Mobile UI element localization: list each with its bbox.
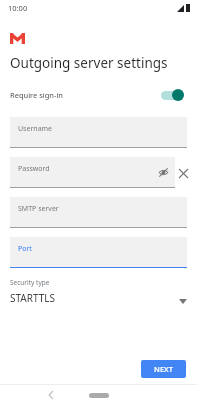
staticText: SMTP server xyxy=(18,204,59,214)
staticText: Security type xyxy=(10,278,50,287)
button[interactable]: Password xyxy=(10,157,175,188)
button[interactable]: Username xyxy=(10,117,187,148)
button[interactable]: Require sign-in xyxy=(0,84,197,106)
button[interactable]: Back xyxy=(43,387,59,403)
staticText: Outgoing server settings xyxy=(10,54,168,72)
staticText: Username xyxy=(18,124,53,134)
staticText: Require sign-in xyxy=(10,90,63,100)
button[interactable]: Show password xyxy=(156,165,170,179)
staticText: 10:00 xyxy=(8,3,28,13)
staticText: Password xyxy=(18,164,50,174)
button[interactable]: Port xyxy=(10,237,187,268)
staticText: STARTTLS xyxy=(10,291,56,305)
button[interactable]: Security type xyxy=(0,278,197,305)
button[interactable]: NEXT xyxy=(141,360,186,378)
button[interactable]: Clear password xyxy=(175,165,191,181)
button[interactable]: Home xyxy=(89,393,109,398)
button[interactable]: SMTP server xyxy=(10,197,187,228)
staticText: Port xyxy=(18,244,32,254)
staticText: NEXT xyxy=(154,364,173,374)
